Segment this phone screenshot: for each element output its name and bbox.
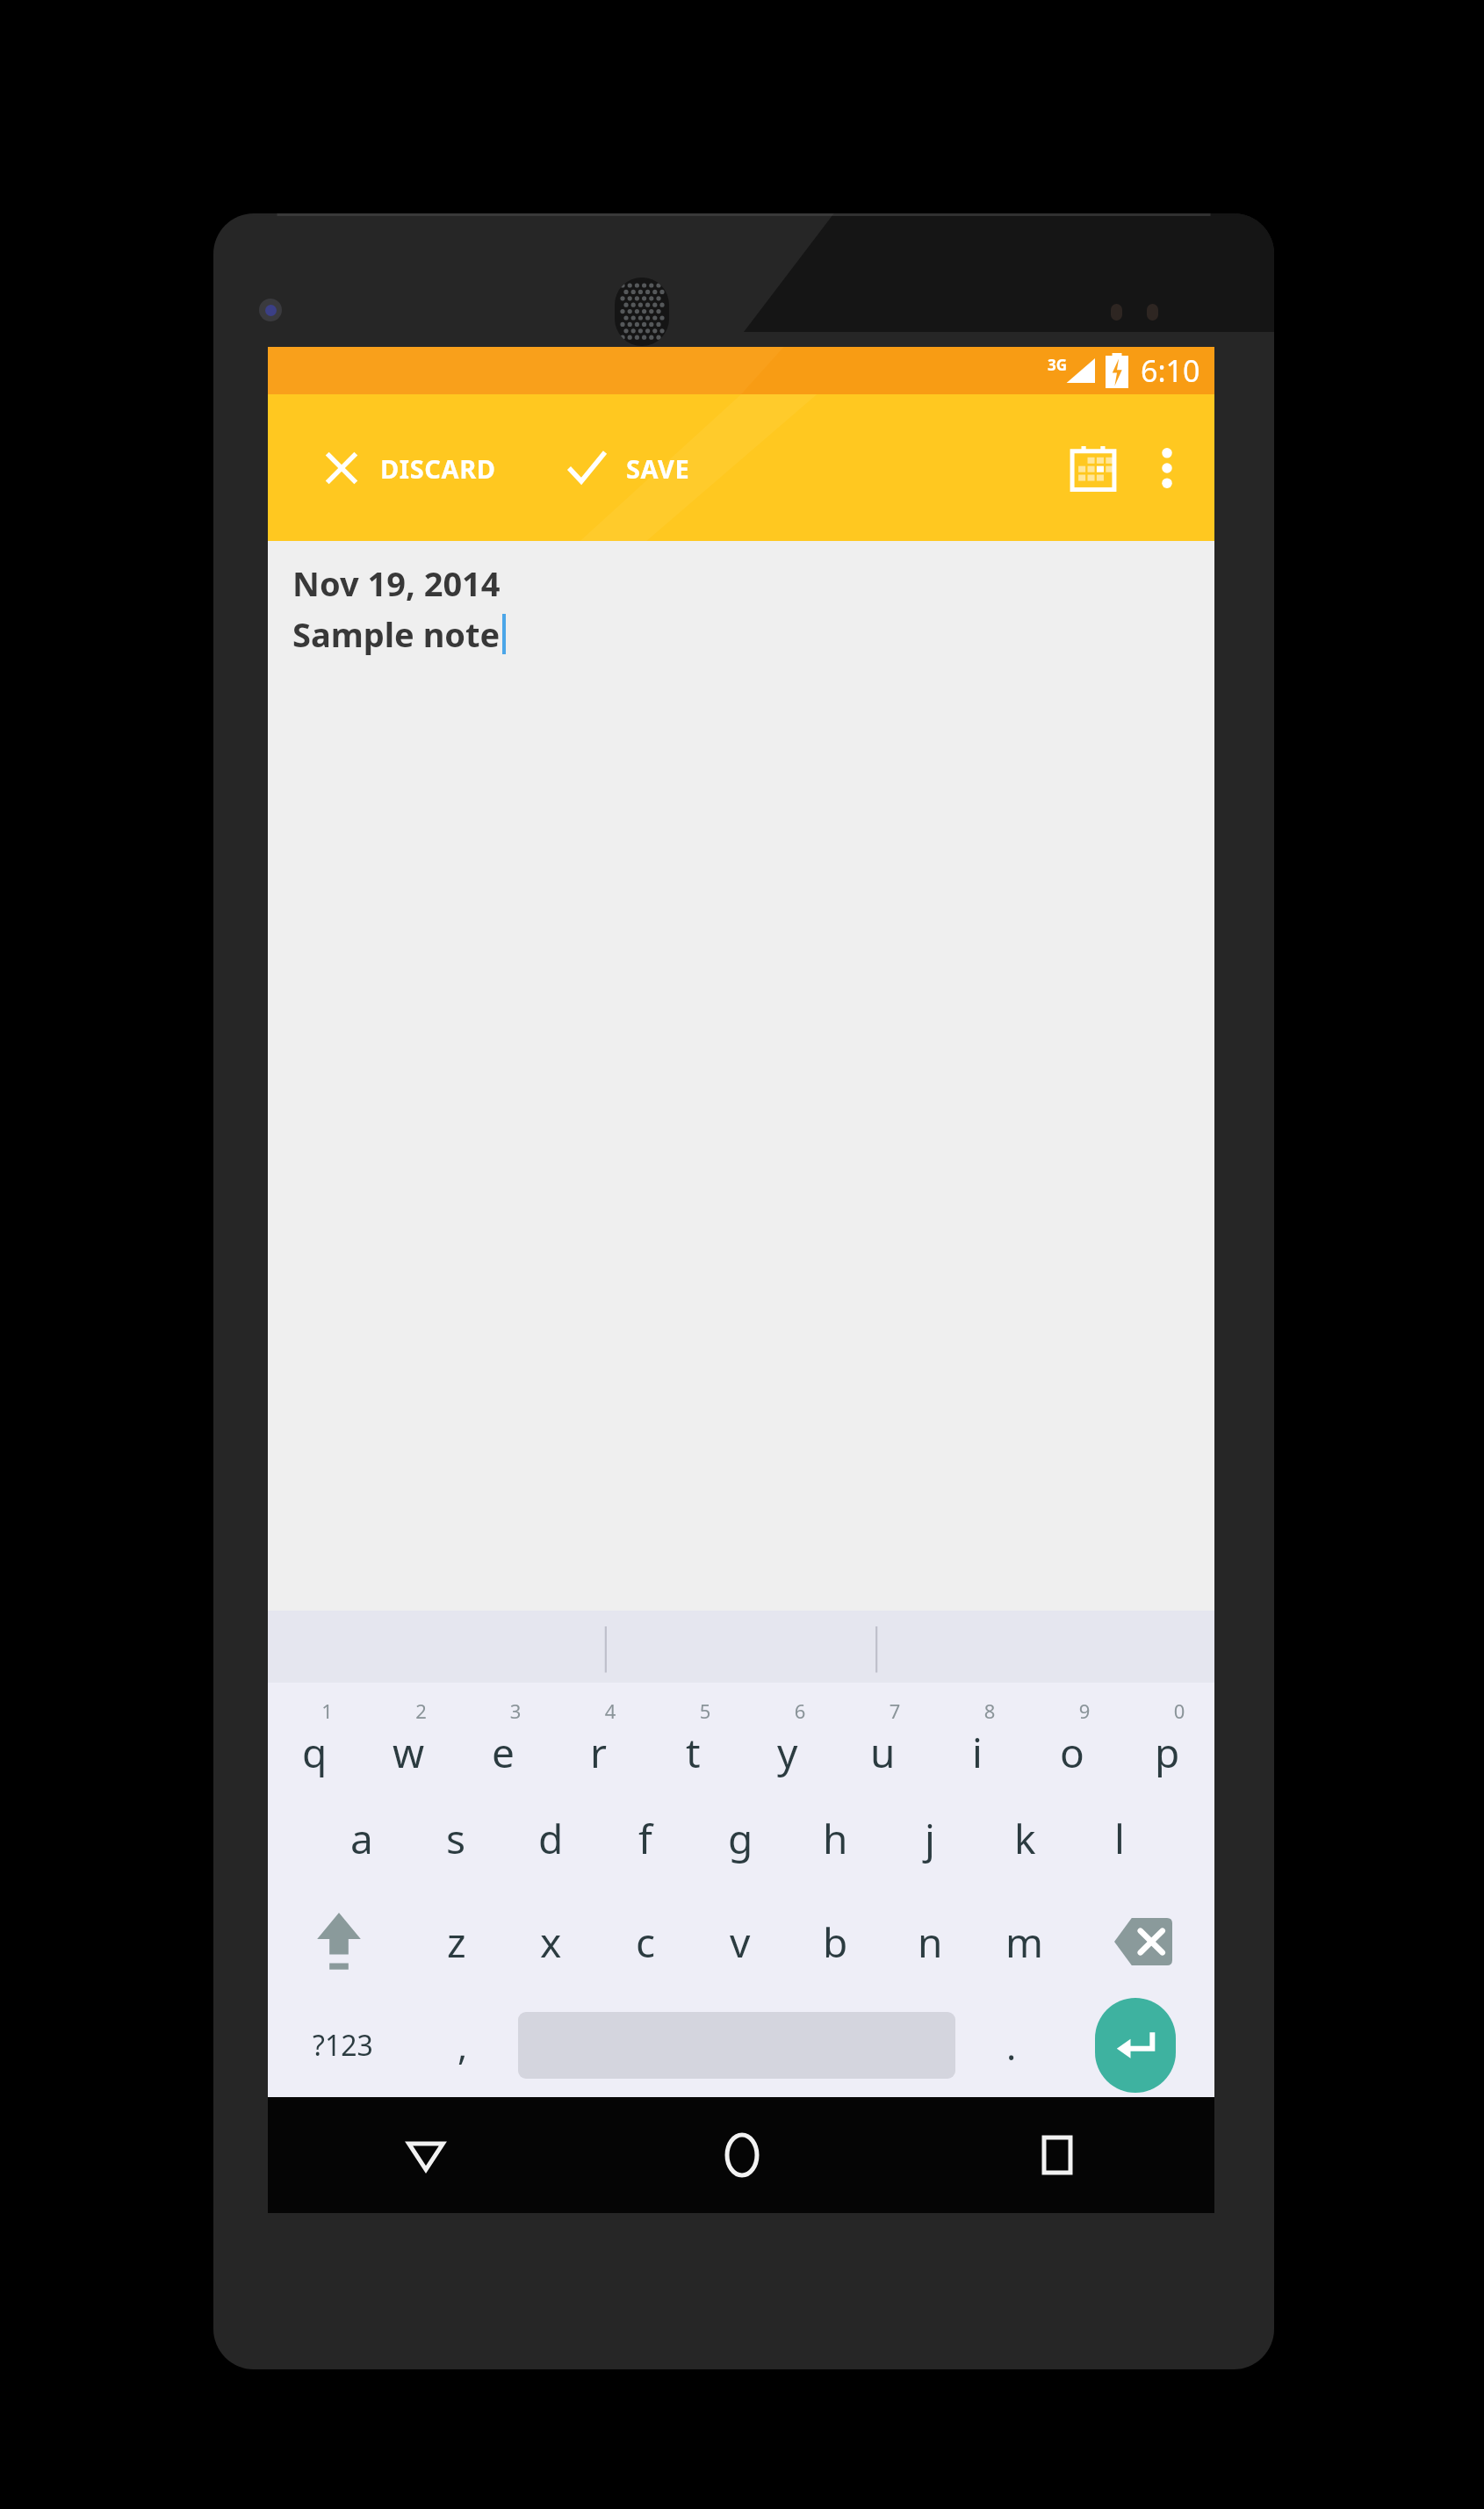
staticText: , [457, 2021, 468, 2071]
staticText: t [686, 1725, 701, 1780]
button[interactable]: h [788, 1786, 882, 1890]
button[interactable]: 9 [1025, 1683, 1120, 1786]
button[interactable]: 5 [645, 1683, 740, 1786]
button[interactable]: a [314, 1786, 408, 1890]
staticText: 9 [1037, 1698, 1132, 1724]
staticText: n [918, 1914, 943, 1970]
button[interactable]: Set reminder date [1058, 433, 1128, 503]
button[interactable]: 2 [362, 1683, 456, 1786]
button[interactable]: ?123 [268, 1994, 418, 2097]
button[interactable]: m [977, 1890, 1072, 1994]
staticText: l [1114, 1811, 1125, 1866]
staticText: 6:10 [1141, 350, 1200, 391]
staticText: f [638, 1811, 652, 1866]
staticText: 7 [847, 1698, 942, 1724]
button[interactable]: More options [1142, 433, 1192, 503]
staticText: b [823, 1914, 848, 1970]
staticText: 0 [1132, 1698, 1227, 1724]
staticText: DISCARD [380, 451, 496, 486]
staticText: Sample note [292, 611, 501, 657]
staticText: 4 [563, 1698, 658, 1724]
staticText: Nov 19, 2014 [292, 560, 501, 606]
button[interactable]: g [693, 1786, 788, 1890]
button[interactable]: n [882, 1890, 977, 1994]
button[interactable]: . [967, 1994, 1055, 2097]
button[interactable]: Backspace [1072, 1890, 1214, 1994]
staticText: g [728, 1811, 753, 1866]
staticText: i [972, 1725, 983, 1780]
button[interactable]: 3 [456, 1683, 551, 1786]
button[interactable]: 8 [930, 1683, 1025, 1786]
button[interactable]: Shift [268, 1890, 409, 1994]
button[interactable]: Nov 19, 2014 [268, 541, 1214, 1611]
staticText: SAVE [626, 451, 690, 486]
button[interactable]: d [503, 1786, 598, 1890]
button[interactable]: z [409, 1890, 503, 1994]
staticText: . [1006, 2021, 1017, 2071]
button[interactable]: Back [268, 2097, 584, 2213]
staticText: ?123 [313, 2026, 373, 2065]
button[interactable]: b [788, 1890, 882, 1994]
staticText: y [777, 1725, 798, 1780]
button[interactable]: c [598, 1890, 693, 1994]
button[interactable]: x [503, 1890, 598, 1994]
button[interactable]: 4 [551, 1683, 645, 1786]
staticText: c [636, 1914, 656, 1970]
button[interactable]: Space [507, 1994, 967, 2097]
button[interactable]: Suggestion [584, 1611, 899, 1683]
button[interactable]: , [418, 1994, 507, 2097]
button[interactable]: 7 [835, 1683, 930, 1786]
staticText: 3G [1048, 355, 1068, 375]
staticText: v [730, 1914, 751, 1970]
staticText: m [1005, 1914, 1044, 1970]
staticText: r [590, 1725, 607, 1780]
staticText: 6 [753, 1698, 847, 1724]
button[interactable]: 0 [1120, 1683, 1214, 1786]
button[interactable]: 6 [740, 1683, 835, 1786]
staticText: x [540, 1914, 562, 1970]
staticText: p [1155, 1725, 1180, 1780]
button[interactable]: DISCARD [315, 435, 501, 501]
button[interactable]: Recent apps [899, 2097, 1214, 2213]
button[interactable]: k [977, 1786, 1072, 1890]
button[interactable]: Enter [1055, 1994, 1214, 2097]
button[interactable]: l [1072, 1786, 1167, 1890]
button[interactable]: j [882, 1786, 977, 1890]
staticText: h [823, 1811, 848, 1866]
staticText: u [870, 1725, 896, 1780]
staticText: 3 [468, 1698, 563, 1724]
staticText: w [393, 1725, 425, 1780]
staticText: 5 [658, 1698, 753, 1724]
staticText: q [302, 1725, 328, 1780]
button[interactable]: s [408, 1786, 503, 1890]
button[interactable]: f [598, 1786, 693, 1890]
staticText: z [447, 1914, 466, 1970]
staticText: d [538, 1811, 564, 1866]
button[interactable]: v [693, 1890, 788, 1994]
staticText: 1 [280, 1698, 374, 1724]
staticText: 8 [942, 1698, 1037, 1724]
staticText: o [1060, 1725, 1084, 1780]
staticText: a [350, 1811, 373, 1866]
staticText: s [446, 1811, 466, 1866]
staticText: j [925, 1811, 935, 1866]
button[interactable]: 1 [268, 1683, 362, 1786]
button[interactable]: Home [584, 2097, 899, 2213]
button[interactable]: SAVE [559, 434, 695, 502]
staticText: e [492, 1725, 515, 1780]
staticText: k [1014, 1811, 1036, 1866]
staticText: 2 [374, 1698, 468, 1724]
